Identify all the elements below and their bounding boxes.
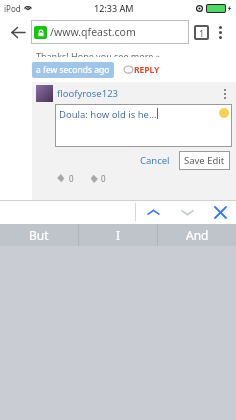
staticText: Save Edit <box>184 154 225 167</box>
button[interactable]: Cancel <box>136 152 174 169</box>
button[interactable]: Dislike <box>88 173 106 184</box>
button[interactable]: /www.qfeast.com <box>34 20 186 44</box>
button[interactable]: Like <box>56 173 74 184</box>
staticText: a few seconds ago <box>36 64 110 76</box>
staticText: Cancel <box>140 154 170 167</box>
button[interactable]: REPLY <box>124 64 160 76</box>
button[interactable]: But <box>0 224 78 246</box>
staticText: iPod <box>4 3 21 14</box>
staticText: 0 <box>101 173 106 184</box>
staticText: floofyrose123 <box>57 87 119 100</box>
button[interactable]: a few seconds ago <box>36 64 110 76</box>
button[interactable]: Doula: how old is he... <box>55 104 232 147</box>
button[interactable]: Next field <box>170 200 204 224</box>
staticText: Thanks! Hope you see more » <box>36 50 161 57</box>
button[interactable]: Previous field <box>136 200 170 224</box>
staticText: Doula: how old is he... <box>59 108 157 121</box>
button[interactable]: Save Edit <box>179 151 230 170</box>
button[interactable]: Tabs <box>194 25 209 40</box>
button[interactable]: Back <box>5 19 31 45</box>
staticText: But <box>29 227 49 243</box>
staticText: /www.qfeast.com <box>50 25 136 39</box>
button[interactable]: More options <box>209 19 231 45</box>
button[interactable]: Comment options <box>218 86 232 102</box>
button[interactable]: I <box>79 224 157 246</box>
staticText: 0 <box>69 173 74 184</box>
staticText: 12:33 AM <box>94 2 134 14</box>
button[interactable]: And <box>158 224 236 246</box>
staticText: REPLY <box>134 64 160 76</box>
staticText: And <box>186 227 209 243</box>
staticText: 1 <box>199 27 205 39</box>
staticText: I <box>116 227 121 243</box>
button[interactable]: Close keyboard <box>204 200 236 224</box>
